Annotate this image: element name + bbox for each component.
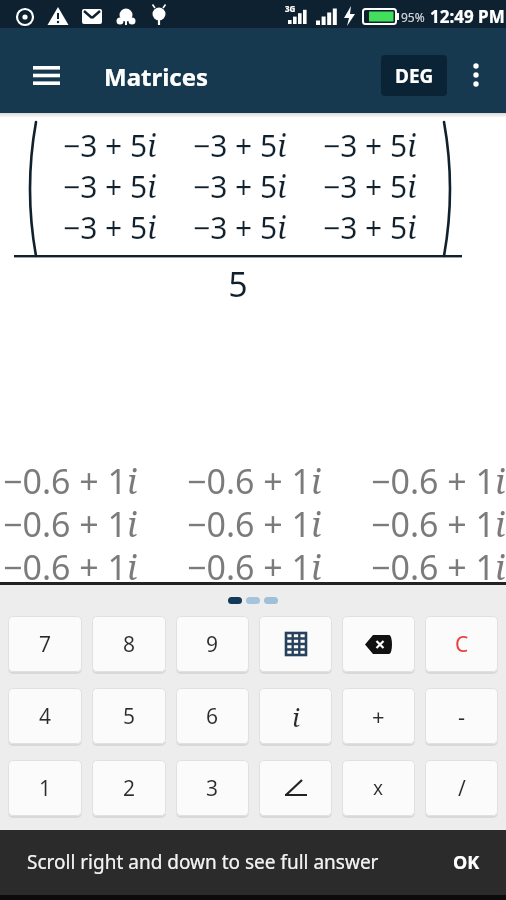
staticText: −3 + 5i — [63, 207, 157, 248]
staticText: −0.6 + 1i — [187, 544, 322, 587]
staticText: −3 + 5i — [63, 125, 157, 166]
staticText: + — [372, 701, 385, 731]
button[interactable]: 8 — [92, 616, 166, 672]
staticText: −0.6 + 1i — [187, 458, 322, 501]
staticText: - — [458, 701, 466, 731]
staticText: 4 — [39, 702, 52, 731]
staticText: 8 — [123, 630, 136, 659]
staticText: / — [458, 774, 466, 803]
button[interactable] — [259, 760, 332, 816]
staticText: −3 + 5i — [193, 207, 287, 248]
staticText: 2 — [123, 774, 136, 803]
button[interactable]: 6 — [176, 688, 249, 744]
button[interactable]: 4 — [8, 688, 82, 744]
staticText: −3 + 5i — [193, 125, 287, 166]
staticText: 1 — [39, 774, 52, 803]
staticText: 7 — [39, 630, 52, 659]
staticText: −3 + 5i — [323, 207, 417, 248]
staticText: 9 — [206, 630, 219, 659]
button[interactable]: i — [259, 688, 332, 744]
button[interactable]: / — [425, 760, 498, 816]
staticText: −3 + 5i — [63, 166, 157, 207]
button[interactable]: DEG — [381, 55, 447, 96]
staticText: 3 — [206, 774, 219, 803]
staticText: 95% — [401, 9, 425, 25]
staticText: DEG — [395, 63, 434, 89]
staticText: 5 — [0, 261, 476, 307]
staticText: C — [455, 630, 469, 659]
button[interactable]: 1 — [8, 760, 82, 816]
staticText: −0.6 + 1i — [371, 458, 506, 501]
staticText: 5 — [123, 702, 136, 731]
staticText: −0.6 + 1i — [3, 501, 138, 544]
button[interactable]: + — [342, 688, 415, 744]
staticText: 12:49 PM — [430, 5, 505, 28]
button[interactable] — [342, 616, 415, 672]
staticText: −3 + 5i — [323, 166, 417, 207]
button[interactable]: 7 — [8, 616, 82, 672]
staticText: −3 + 5i — [193, 166, 287, 207]
button[interactable]: 5 — [92, 688, 166, 744]
button[interactable] — [259, 616, 332, 672]
staticText: −0.6 + 1i — [3, 544, 138, 587]
button[interactable]: 9 — [176, 616, 249, 672]
button[interactable] — [460, 57, 492, 93]
staticText: 3G — [285, 3, 296, 14]
staticText: Scroll right and down to see full answer — [27, 849, 379, 875]
staticText: −0.6 + 1i — [371, 544, 506, 587]
button[interactable]: - — [425, 688, 498, 744]
button[interactable] — [24, 57, 68, 93]
staticText: 6 — [206, 702, 219, 731]
staticText: i — [292, 699, 300, 734]
staticText: −3 + 5i — [323, 125, 417, 166]
staticText: OK — [453, 850, 480, 875]
button[interactable]: C — [425, 616, 498, 672]
staticText: −0.6 + 1i — [371, 501, 506, 544]
button[interactable]: 3 — [176, 760, 249, 816]
staticText: −0.6 + 1i — [187, 501, 322, 544]
staticText: −0.6 + 1i — [3, 458, 138, 501]
button[interactable]: x — [342, 760, 415, 816]
button[interactable]: OK — [445, 842, 488, 883]
button[interactable]: 2 — [92, 760, 166, 816]
staticText: Matrices — [104, 60, 209, 93]
staticText: x — [373, 775, 384, 801]
